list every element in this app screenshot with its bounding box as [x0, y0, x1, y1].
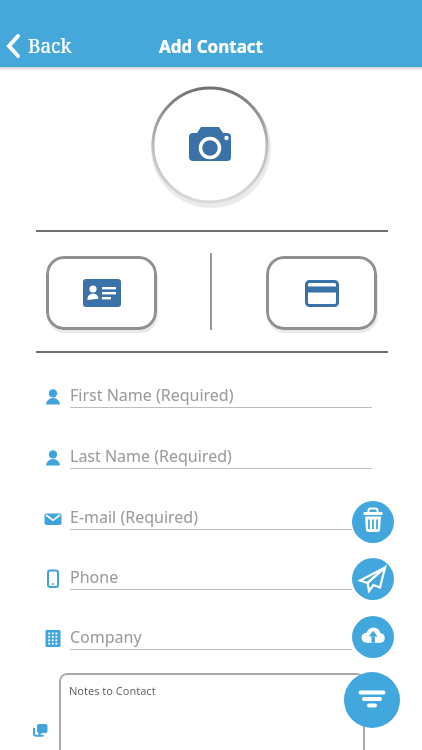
staticText: Phone — [70, 566, 119, 588]
button[interactable]: Last Name (Required) — [36, 443, 378, 477]
staticText: E-mail (Required) — [70, 506, 198, 528]
button[interactable] — [46, 256, 157, 330]
button[interactable] — [352, 501, 394, 543]
button[interactable]: Back — [6, 33, 72, 59]
button[interactable] — [150, 85, 270, 205]
button[interactable]: E-mail (Required) — [36, 504, 358, 538]
staticText: Notes to Contact — [69, 683, 156, 698]
button[interactable] — [266, 256, 377, 330]
staticText: Company — [70, 626, 142, 648]
button[interactable] — [31, 722, 49, 740]
button[interactable]: Company — [36, 624, 358, 658]
button[interactable] — [352, 616, 394, 658]
button[interactable]: Phone — [36, 564, 358, 598]
staticText: Last Name (Required) — [70, 445, 232, 467]
staticText: First Name (Required) — [70, 384, 234, 406]
staticText: Add Contact — [159, 35, 263, 58]
button[interactable] — [352, 558, 394, 600]
staticText: Back — [28, 33, 72, 59]
button[interactable]: Notes to Contact — [59, 673, 365, 750]
button[interactable]: First Name (Required) — [36, 382, 378, 416]
button[interactable] — [344, 672, 400, 728]
